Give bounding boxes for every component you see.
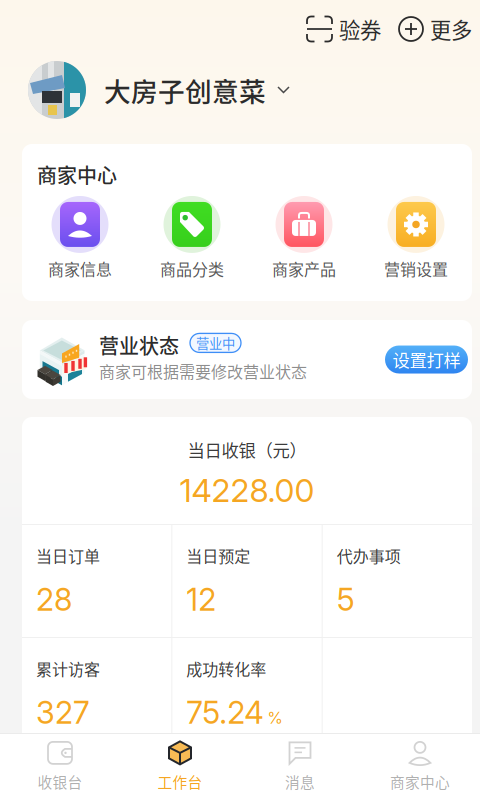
staticText: 商家中心: [37, 160, 117, 189]
staticText: 更多: [430, 14, 472, 44]
button[interactable]: 更多: [399, 14, 472, 44]
staticText: 12: [186, 581, 216, 618]
staticText: %: [267, 708, 283, 728]
staticText: 代办事项: [337, 544, 401, 567]
staticText: 当日订单: [36, 544, 100, 567]
button[interactable]: 商品分类: [136, 196, 248, 280]
staticText: 当日收银（元）: [187, 437, 306, 462]
staticText: 商家信息: [48, 257, 112, 280]
button[interactable]: 商家中心: [360, 732, 480, 800]
staticText: 累计访客: [36, 657, 100, 680]
staticText: 消息: [285, 771, 315, 792]
staticText: 商家中心: [390, 771, 450, 792]
button[interactable]: 大房子创意菜: [104, 71, 290, 109]
staticText: 当日预定: [186, 544, 250, 567]
button[interactable]: 验券: [307, 14, 381, 44]
staticText: 75.24: [186, 694, 263, 731]
staticText: 验券: [339, 14, 381, 44]
staticText: 商家可根据需要修改营业状态: [99, 359, 307, 383]
button[interactable]: 营销设置: [360, 196, 472, 280]
staticText: 327: [36, 694, 90, 731]
button[interactable]: 工作台: [120, 732, 240, 800]
staticText: 商家产品: [272, 257, 336, 280]
button[interactable]: 收银台: [0, 732, 120, 800]
staticText: 工作台: [157, 771, 202, 792]
button[interactable]: 商家信息: [24, 196, 136, 280]
staticText: 收银台: [37, 771, 82, 792]
button[interactable]: 设置打样: [385, 345, 468, 373]
staticText: 营销设置: [384, 257, 448, 280]
staticText: 营业中: [196, 333, 235, 353]
staticText: 营业状态: [99, 330, 179, 359]
staticText: 28: [36, 581, 72, 618]
staticText: 大房子创意菜: [104, 71, 266, 109]
staticText: 5: [337, 581, 355, 618]
staticText: 14228.00: [179, 471, 314, 510]
button[interactable]: 消息: [240, 732, 360, 800]
staticText: 成功转化率: [186, 657, 266, 680]
staticText: 商品分类: [160, 257, 224, 280]
button[interactable]: 商家产品: [248, 196, 360, 280]
staticText: 设置打样: [392, 347, 460, 372]
